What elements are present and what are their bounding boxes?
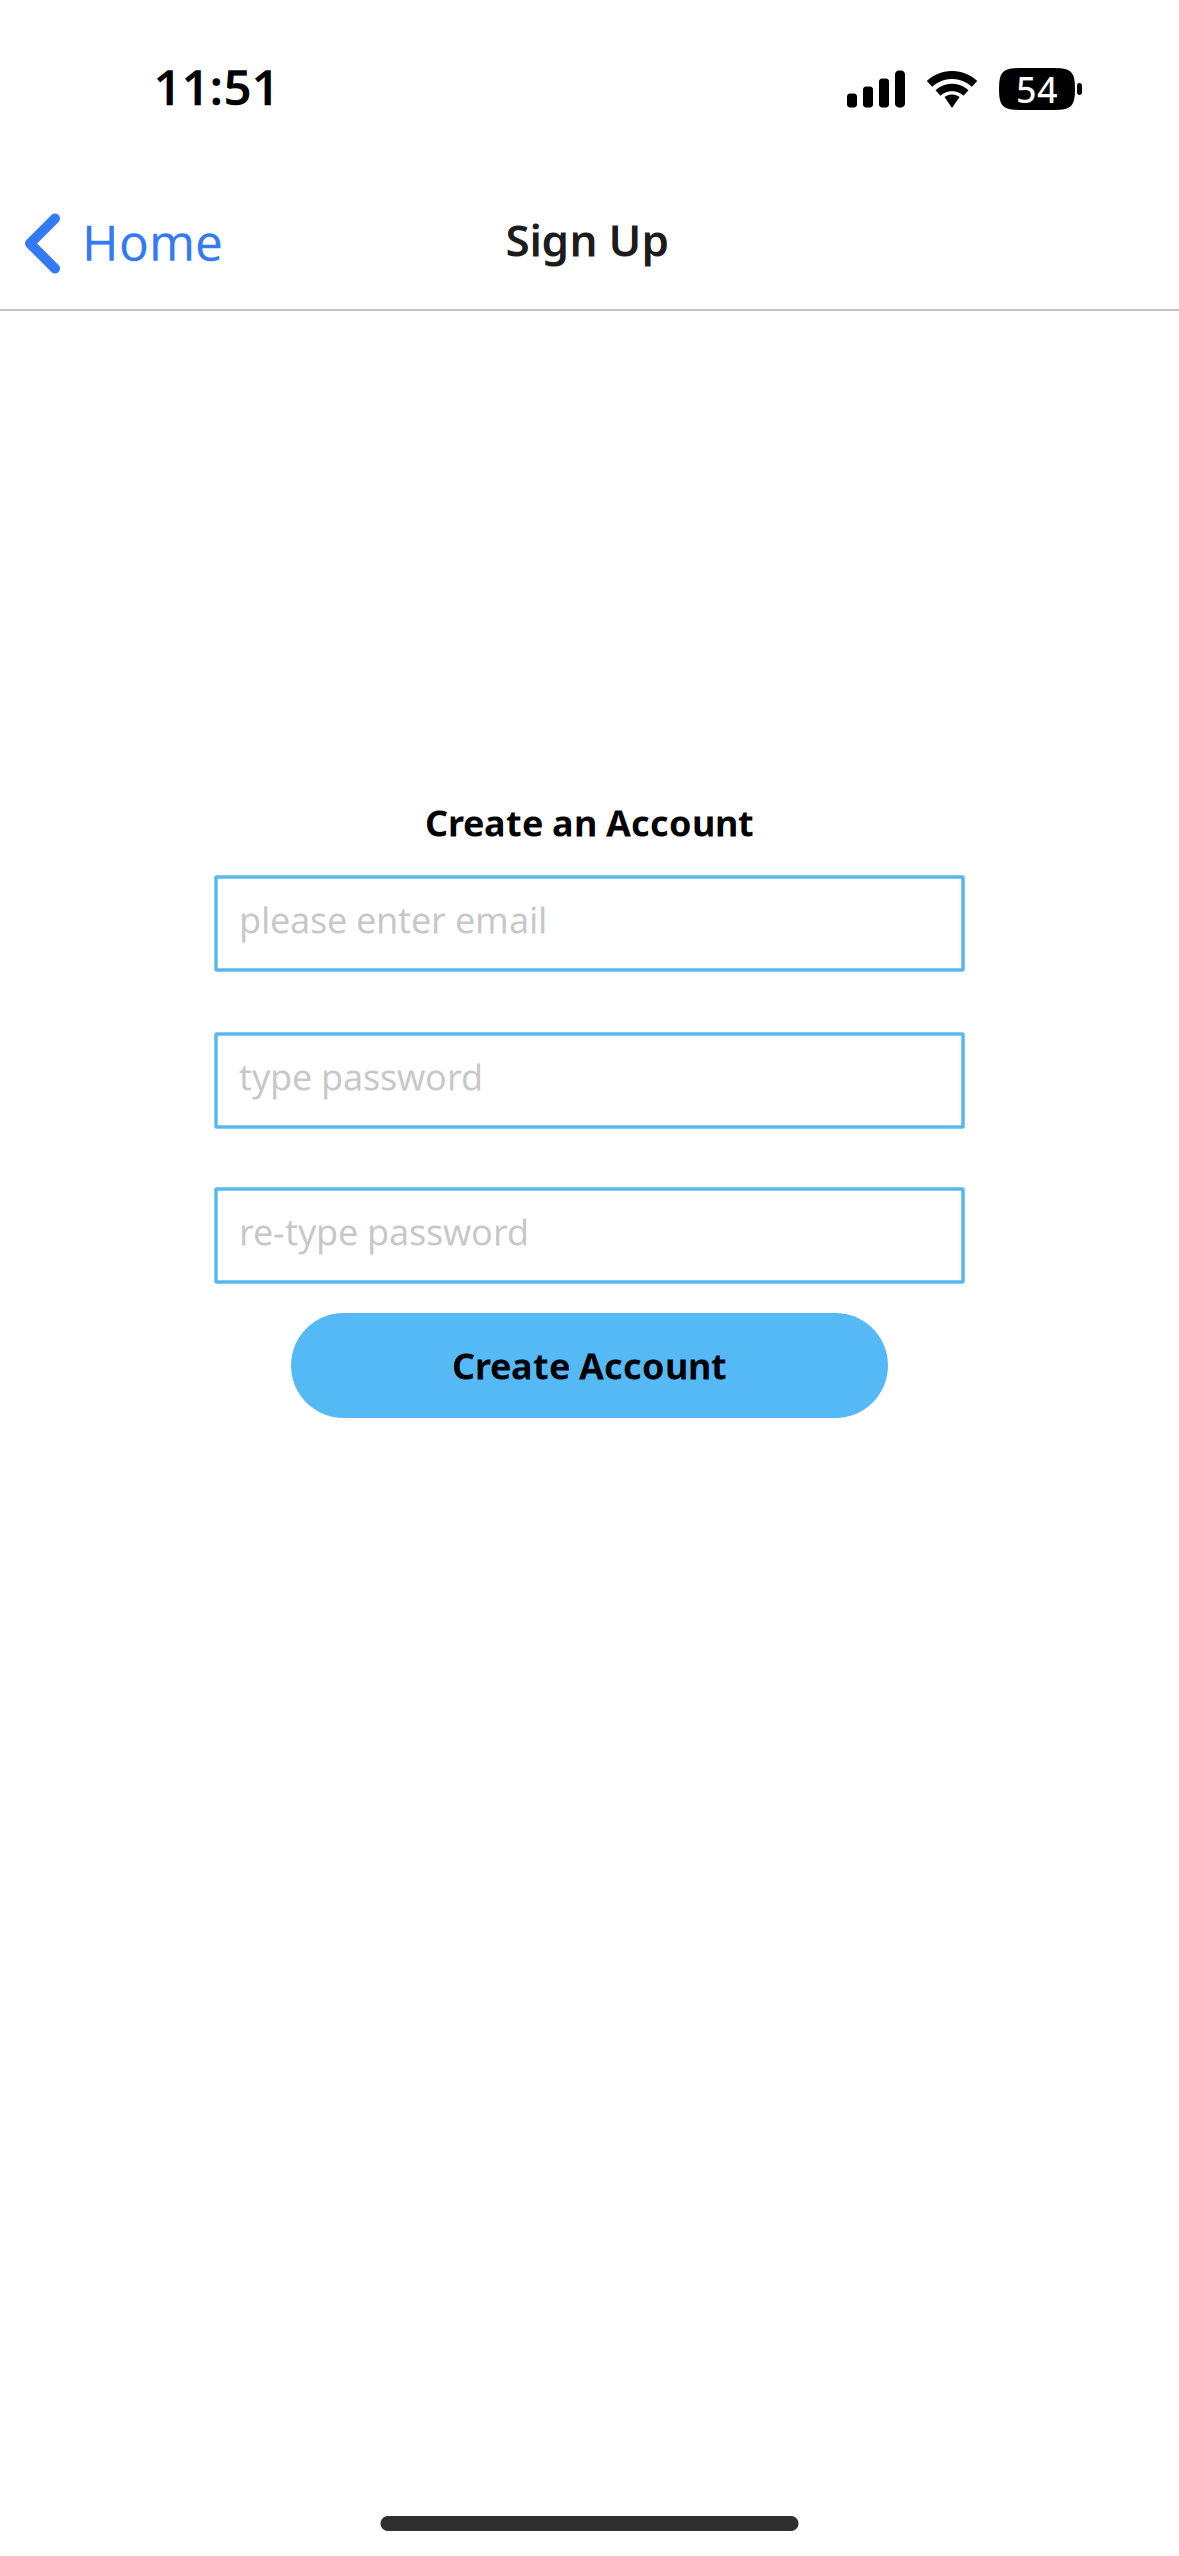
staticText: type password — [239, 1053, 483, 1100]
staticText: Create Account — [452, 1342, 727, 1389]
staticText: please enter email — [239, 896, 547, 943]
button[interactable]: Back to Home — [0, 188, 241, 298]
button[interactable]: Create Account — [291, 1313, 888, 1418]
staticText: Home — [82, 209, 223, 274]
staticText: Create an Account — [425, 799, 754, 846]
staticText: 54 — [1016, 65, 1058, 113]
button[interactable]: re-type password — [216, 1189, 963, 1282]
button[interactable]: type password — [216, 1034, 963, 1127]
staticText: 11:51 — [153, 53, 279, 119]
staticText: Sign Up — [505, 210, 669, 269]
button[interactable]: please enter email — [216, 877, 963, 970]
staticText: re-type password — [239, 1208, 529, 1255]
